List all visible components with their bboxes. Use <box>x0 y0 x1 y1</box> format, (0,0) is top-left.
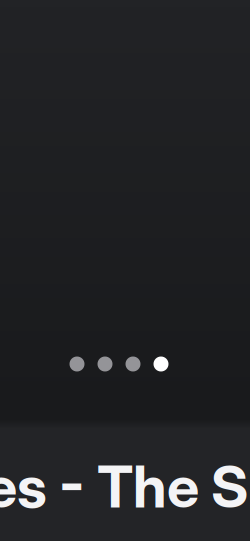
staticText: es - The S <box>0 452 248 521</box>
